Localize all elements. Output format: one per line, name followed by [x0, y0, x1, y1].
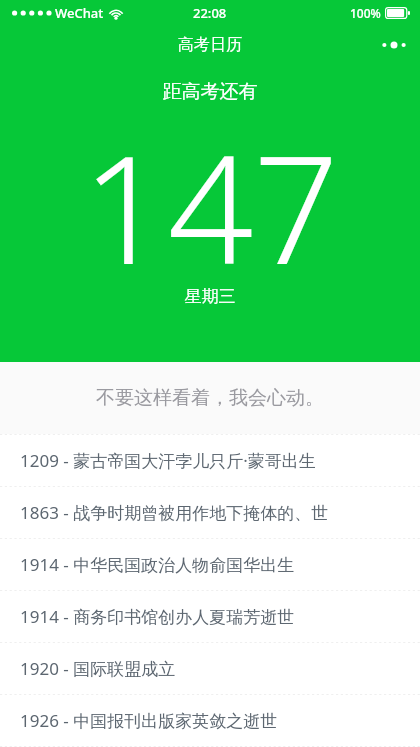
staticText: 22:08 — [193, 4, 227, 22]
staticText: 1926 - 中国报刊出版家英敛之逝世 — [20, 709, 278, 732]
staticText: 星期三 — [0, 286, 420, 307]
staticText: WeChat — [55, 4, 104, 22]
staticText: 距高考还有 — [0, 80, 420, 104]
button[interactable]: 不要这样看着，我会心动。 — [0, 362, 420, 434]
staticText: 147 — [82, 104, 339, 286]
staticText: 1914 - 中华民国政治人物俞国华出生 — [20, 553, 295, 576]
button[interactable]: 1920 - 国际联盟成立 — [0, 643, 420, 694]
staticText: 1209 - 蒙古帝国大汗孛儿只斤·蒙哥出生 — [20, 449, 316, 472]
staticText: 不要这样看着，我会心动。 — [96, 386, 324, 410]
button[interactable]: 1914 - 商务印书馆创办人夏瑞芳逝世 — [0, 591, 420, 642]
button[interactable]: More options — [374, 28, 414, 62]
staticText: 高考日历 — [178, 35, 242, 55]
button[interactable]: 1209 - 蒙古帝国大汗孛儿只斤·蒙哥出生 — [0, 435, 420, 486]
staticText: 1914 - 商务印书馆创办人夏瑞芳逝世 — [20, 605, 295, 628]
button[interactable]: 1914 - 中华民国政治人物俞国华出生 — [0, 539, 420, 590]
staticText: 1920 - 国际联盟成立 — [20, 657, 176, 680]
button[interactable]: 1863 - 战争时期曾被用作地下掩体的、世 — [0, 487, 420, 538]
staticText: 1863 - 战争时期曾被用作地下掩体的、世 — [20, 501, 329, 524]
button[interactable]: 1926 - 中国报刊出版家英敛之逝世 — [0, 695, 420, 746]
staticText: 100% — [350, 5, 381, 21]
